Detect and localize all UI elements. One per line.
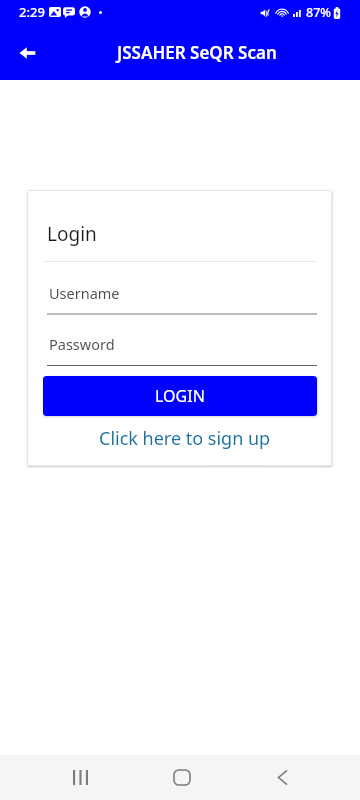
button[interactable]: Click here to sign up bbox=[27, 418, 332, 458]
staticText: Click here to sign up bbox=[99, 426, 271, 451]
button[interactable]: Navigate back bbox=[7, 32, 47, 72]
button[interactable]: Back bbox=[258, 755, 306, 800]
staticText: 2:29 bbox=[19, 3, 45, 21]
staticText: 87% bbox=[306, 4, 331, 21]
staticText: Password bbox=[49, 334, 115, 354]
button[interactable]: Recent apps bbox=[56, 755, 104, 800]
staticText: Username bbox=[49, 283, 120, 303]
button[interactable]: LOGIN bbox=[43, 376, 317, 416]
staticText: LOGIN bbox=[155, 385, 205, 407]
button[interactable]: Home bbox=[158, 755, 206, 800]
staticText: Login bbox=[47, 221, 97, 247]
staticText: JSSAHER SeQR Scan bbox=[117, 41, 277, 64]
